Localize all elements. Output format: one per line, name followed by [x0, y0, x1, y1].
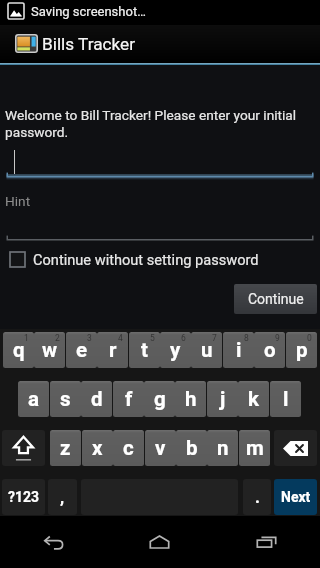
- staticText: y: [170, 338, 181, 362]
- staticText: j: [220, 387, 226, 411]
- button[interactable]: Recents: [213, 516, 320, 568]
- staticText: b: [186, 436, 198, 460]
- button[interactable]: x: [82, 430, 113, 466]
- button[interactable]: e: [66, 332, 97, 368]
- staticText: 3: [87, 333, 92, 343]
- button[interactable]: v: [145, 430, 176, 466]
- staticText: q: [13, 338, 25, 362]
- button[interactable]: s: [50, 381, 81, 417]
- staticText: 0: [307, 333, 312, 343]
- staticText: u: [201, 338, 213, 362]
- staticText: Bills Tracker: [42, 34, 135, 54]
- button[interactable]: o: [254, 332, 285, 368]
- button[interactable]: g: [144, 381, 175, 417]
- staticText: a: [28, 387, 39, 411]
- staticText: 7: [212, 333, 217, 343]
- staticText: ,: [60, 487, 65, 507]
- button[interactable]: l: [270, 381, 301, 417]
- staticText: x: [92, 436, 103, 460]
- staticText: f: [125, 387, 133, 411]
- button[interactable]: f: [113, 381, 144, 417]
- button[interactable]: ,: [48, 479, 77, 515]
- button[interactable]: ?123: [2, 479, 45, 515]
- staticText: 5: [150, 333, 155, 343]
- staticText: 8: [244, 333, 249, 343]
- button[interactable]: j: [207, 381, 238, 417]
- button[interactable]: Delete: [274, 430, 317, 466]
- staticText: k: [248, 387, 259, 411]
- button[interactable]: b: [176, 430, 207, 466]
- staticText: Saving screenshot…: [31, 4, 146, 19]
- button[interactable]: Continue without setting password: [10, 251, 320, 268]
- staticText: 1: [24, 333, 29, 343]
- staticText: o: [264, 338, 276, 362]
- staticText: r: [109, 338, 117, 362]
- button[interactable]: a: [18, 381, 49, 417]
- button[interactable]: h: [175, 381, 206, 417]
- staticText: Continue without setting password: [33, 251, 259, 268]
- staticText: 9: [275, 333, 280, 343]
- staticText: d: [91, 387, 103, 411]
- staticText: m: [246, 436, 264, 460]
- staticText: s: [60, 387, 71, 411]
- staticText: 2: [55, 333, 60, 343]
- button[interactable]: Back: [0, 516, 106, 568]
- staticText: Hint: [5, 193, 31, 209]
- button[interactable]: c: [113, 430, 144, 466]
- button[interactable]: w: [34, 332, 65, 368]
- button[interactable]: u: [191, 332, 222, 368]
- staticText: z: [60, 436, 71, 460]
- button[interactable]: .: [243, 479, 271, 515]
- button[interactable]: Home: [106, 516, 213, 568]
- button[interactable]: Shift: [2, 430, 45, 466]
- staticText: p: [296, 338, 308, 362]
- staticText: Continue: [248, 291, 304, 307]
- staticText: ?123: [8, 489, 40, 505]
- staticText: l: [283, 387, 289, 411]
- button[interactable]: d: [81, 381, 112, 417]
- button[interactable]: z: [50, 430, 81, 466]
- staticText: Welcome to Bill Tracker! Please enter yo…: [5, 107, 308, 140]
- button[interactable]: Next: [274, 479, 317, 515]
- staticText: t: [141, 338, 148, 362]
- button[interactable]: r: [97, 332, 128, 368]
- staticText: c: [123, 436, 134, 460]
- button[interactable]: y: [160, 332, 191, 368]
- staticText: i: [236, 338, 242, 362]
- button[interactable]: q: [3, 332, 34, 368]
- button[interactable]: Continue: [234, 284, 317, 314]
- button[interactable]: m: [239, 430, 270, 466]
- staticText: g: [154, 387, 166, 411]
- staticText: Next: [281, 489, 311, 505]
- button[interactable]: i: [223, 332, 254, 368]
- staticText: 4: [118, 333, 123, 343]
- staticText: h: [185, 387, 197, 411]
- button[interactable]: k: [238, 381, 269, 417]
- staticText: w: [42, 338, 58, 362]
- staticText: v: [155, 436, 166, 460]
- staticText: e: [76, 338, 88, 362]
- staticText: .: [255, 487, 260, 507]
- button[interactable]: t: [129, 332, 160, 368]
- staticText: 6: [181, 333, 186, 343]
- button[interactable]: p: [286, 332, 317, 368]
- staticText: n: [217, 436, 229, 460]
- button[interactable]: n: [207, 430, 238, 466]
